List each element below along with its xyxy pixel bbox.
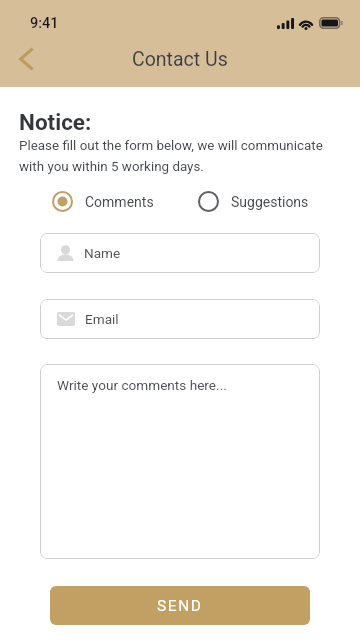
staticText: Contact Us <box>132 48 228 71</box>
staticText: Write your comments here... <box>57 377 227 393</box>
staticText: SEND <box>157 597 203 615</box>
staticText: Name <box>84 245 121 261</box>
staticText: Please fill out the form below, we will … <box>19 138 323 174</box>
staticText: Notice: <box>19 109 92 135</box>
button[interactable]: Comments <box>52 191 154 212</box>
button[interactable]: Back <box>6 39 46 79</box>
button[interactable]: Suggestions <box>198 191 309 212</box>
staticText: Suggestions <box>231 194 309 210</box>
button[interactable]: Name <box>40 233 320 273</box>
staticText: 9:41 <box>30 15 59 32</box>
staticText: Comments <box>85 194 154 210</box>
button[interactable]: Write your comments here... <box>40 364 320 559</box>
button[interactable]: Email <box>40 299 320 339</box>
staticText: Email <box>85 311 119 327</box>
button[interactable]: SEND <box>50 586 310 625</box>
